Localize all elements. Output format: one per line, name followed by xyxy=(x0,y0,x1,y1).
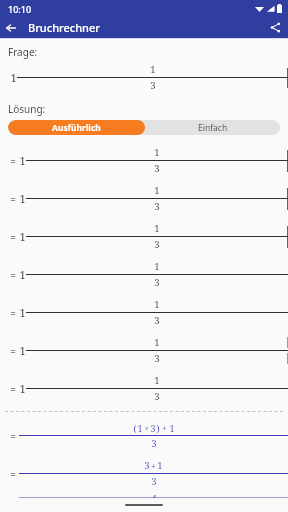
staticText: = xyxy=(10,268,16,282)
staticText: 4 xyxy=(151,492,157,498)
staticText: 10:10 xyxy=(8,3,32,15)
staticText: 1 xyxy=(10,70,17,85)
staticText: 3 xyxy=(151,437,157,450)
staticText: 3 xyxy=(154,238,160,251)
staticText: = xyxy=(10,429,16,443)
staticText: 1 xyxy=(19,305,26,320)
staticText: × xyxy=(144,423,149,433)
staticText: Lösung: xyxy=(8,102,46,116)
staticText: 3 xyxy=(154,352,160,365)
staticText: 3 xyxy=(150,422,156,434)
staticText: 3 xyxy=(150,79,156,92)
staticText: + xyxy=(162,422,167,434)
staticText: 1 xyxy=(150,63,156,76)
staticText: 1 xyxy=(157,459,163,472)
button[interactable]: Einfach xyxy=(145,120,280,135)
staticText: 1 xyxy=(154,184,160,197)
staticText: 3 xyxy=(154,276,160,289)
staticText: 1 xyxy=(19,191,26,206)
staticText: = xyxy=(10,154,16,168)
staticText: 3 xyxy=(144,459,150,472)
staticText: 1 xyxy=(137,422,143,434)
staticText: 1 xyxy=(154,222,160,235)
staticText: 1 xyxy=(154,336,160,349)
staticText: = xyxy=(10,467,16,481)
staticText: 1 xyxy=(154,374,160,387)
button[interactable]: Back xyxy=(0,17,21,38)
staticText: = xyxy=(10,230,16,244)
staticText: 1 xyxy=(154,146,160,159)
staticText: 3 xyxy=(154,200,160,213)
staticText: 1 xyxy=(19,381,26,396)
staticText: 1 xyxy=(154,260,160,273)
staticText: 1 xyxy=(19,343,26,358)
staticText: 3 xyxy=(154,314,160,327)
staticText: 1 xyxy=(169,422,175,434)
staticText: 1 xyxy=(19,229,26,244)
staticText: 3 xyxy=(151,475,157,488)
staticText: 1 xyxy=(19,153,26,168)
staticText: Einfach xyxy=(198,122,228,134)
staticText: Bruchrechner xyxy=(28,20,100,35)
staticText: + xyxy=(151,460,156,472)
button[interactable]: Ausführlich xyxy=(8,120,145,135)
staticText: = xyxy=(10,192,16,206)
button[interactable]: Share xyxy=(265,17,286,38)
staticText: = xyxy=(10,306,16,320)
staticText: 1 xyxy=(154,298,160,311)
staticText: ) xyxy=(156,422,160,434)
staticText: 1 xyxy=(19,267,26,282)
staticText: ( xyxy=(133,422,137,434)
staticText: 3 xyxy=(154,390,160,403)
staticText: Ausführlich xyxy=(52,122,101,134)
staticText: 3 xyxy=(154,162,160,175)
staticText: Frage: xyxy=(8,45,38,59)
staticText: = xyxy=(10,344,16,358)
staticText: = xyxy=(10,382,16,396)
